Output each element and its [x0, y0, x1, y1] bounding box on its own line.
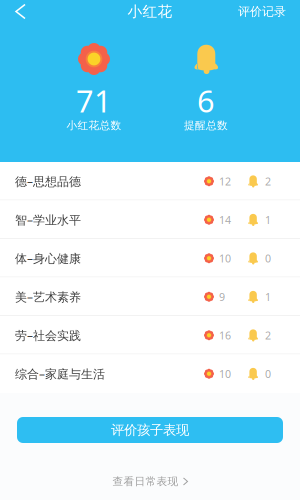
button[interactable]: 评价记录	[228, 0, 300, 23]
button[interactable]: 返回	[0, 0, 37, 22]
staticText: 71	[76, 80, 112, 121]
staticText: 6	[197, 80, 215, 121]
staticText: 10	[219, 367, 231, 381]
staticText: 1	[265, 213, 271, 227]
staticText: 体–身心健康	[15, 250, 81, 266]
button[interactable]: 智–学业水平	[0, 200, 300, 239]
staticText: 智–学业水平	[15, 212, 81, 228]
button[interactable]: 体–身心健康	[0, 239, 300, 277]
staticText: 10	[219, 251, 231, 265]
staticText: 2	[265, 174, 271, 188]
staticText: 提醒总数	[184, 119, 228, 132]
staticText: 1	[265, 290, 271, 304]
button[interactable]: 综合–家庭与生活	[0, 354, 300, 393]
button[interactable]: 查看日常表现	[96, 469, 203, 494]
staticText: 0	[265, 367, 271, 381]
staticText: 查看日常表现	[112, 475, 178, 488]
staticText: 美–艺术素养	[15, 289, 81, 305]
button[interactable]: 美–艺术素养	[0, 277, 300, 316]
button[interactable]: 劳–社会实践	[0, 316, 300, 354]
button[interactable]: 德–思想品德	[0, 162, 300, 200]
staticText: 小红花	[127, 2, 172, 20]
staticText: 评价孩子表现	[111, 422, 189, 438]
staticText: 劳–社会实践	[15, 327, 81, 343]
staticText: 综合–家庭与生活	[15, 366, 105, 382]
staticText: 小红花总数	[66, 119, 121, 132]
staticText: 14	[219, 213, 231, 227]
staticText: 2	[265, 328, 271, 342]
staticText: 9	[219, 290, 225, 304]
staticText: 评价记录	[238, 4, 286, 19]
staticText: 12	[219, 174, 231, 188]
staticText: 0	[265, 251, 271, 265]
button[interactable]: 评价孩子表现	[17, 417, 283, 443]
staticText: 德–思想品德	[15, 173, 81, 189]
staticText: 16	[219, 328, 231, 342]
